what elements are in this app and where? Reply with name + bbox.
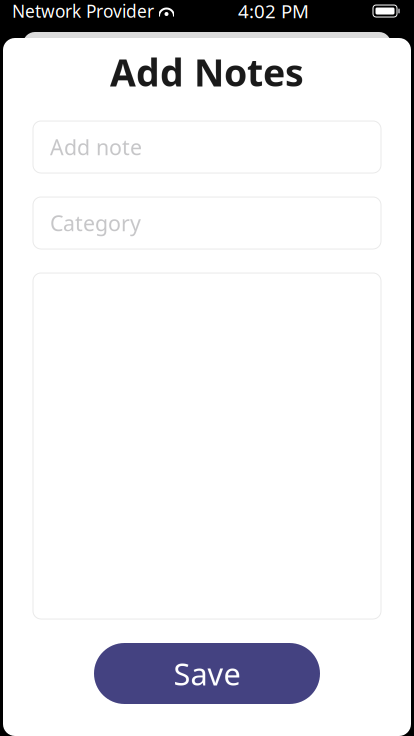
staticText: 4:02 PM <box>238 0 309 23</box>
button[interactable]: Add note <box>33 121 381 173</box>
button[interactable]: Save <box>94 643 320 704</box>
staticText: Network Provider <box>12 0 154 22</box>
button[interactable]: Category <box>33 197 381 249</box>
staticText: Save <box>173 653 240 694</box>
staticText: Add note <box>50 133 142 161</box>
staticText: Category <box>50 209 141 237</box>
staticText: Add Notes <box>110 47 304 97</box>
